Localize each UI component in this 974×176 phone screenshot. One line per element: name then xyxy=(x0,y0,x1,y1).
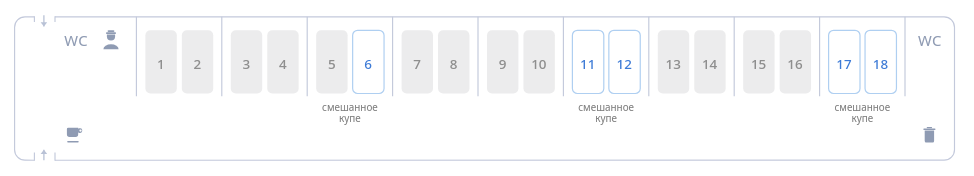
button[interactable]: Seat 13 xyxy=(658,30,689,93)
button[interactable]: Seat 17 xyxy=(829,30,860,93)
button[interactable]: Cafe xyxy=(64,124,86,146)
button[interactable]: Seat 3 xyxy=(231,30,262,93)
button[interactable]: Seat 12 xyxy=(609,30,640,93)
button[interactable]: Seat 2 xyxy=(182,30,213,93)
button[interactable]: Seat 9 xyxy=(487,30,518,93)
button[interactable]: Conductor xyxy=(100,28,123,51)
button[interactable]: Seat 1 xyxy=(145,30,176,93)
button[interactable]: Trash xyxy=(918,124,941,146)
button[interactable]: Seat 5 xyxy=(316,30,347,93)
button[interactable]: Seat 14 xyxy=(694,30,725,93)
button[interactable]: Seat 16 xyxy=(780,30,811,93)
button[interactable]: Seat 4 xyxy=(267,30,298,93)
button[interactable]: Seat 15 xyxy=(743,30,774,93)
button[interactable]: Seat 10 xyxy=(523,30,554,93)
button[interactable]: Seat 8 xyxy=(438,30,469,93)
button[interactable]: Seat 18 xyxy=(865,30,896,93)
button[interactable]: Seat 11 xyxy=(572,30,603,93)
button[interactable]: Seat 6 xyxy=(353,30,384,93)
button[interactable]: Seat 7 xyxy=(402,30,433,93)
